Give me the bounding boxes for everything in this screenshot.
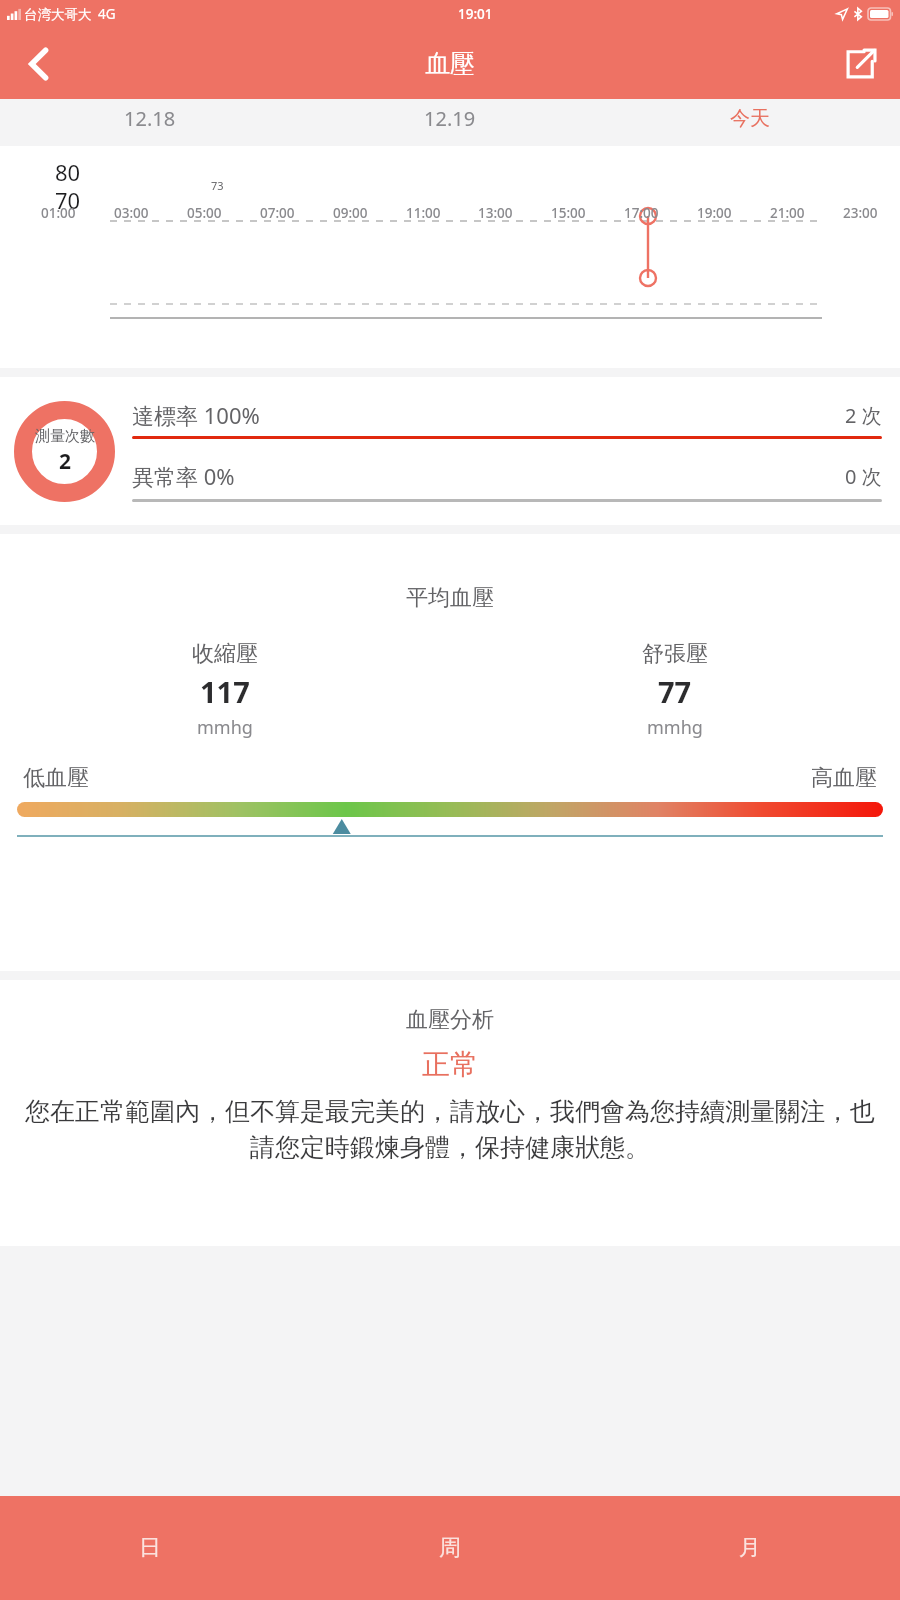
staticText: 77 [658, 672, 692, 711]
staticText: 117 [200, 672, 250, 711]
staticText: 05:00 [187, 204, 222, 222]
button[interactable]: 今天 [600, 99, 900, 137]
staticText: 80 [55, 157, 81, 187]
staticText: 03:00 [114, 204, 149, 222]
staticText: 09:00 [333, 204, 368, 222]
staticText: 台湾大哥大 [24, 6, 92, 23]
staticText: 11:00 [406, 204, 441, 222]
staticText: 異常率 0% [132, 461, 235, 491]
staticText: mmhg [647, 715, 703, 740]
staticText: 血壓 [425, 48, 475, 79]
button[interactable]: 日 [0, 1496, 300, 1600]
button[interactable]: Back [10, 36, 66, 92]
staticText: 測量次數 [35, 427, 95, 446]
button[interactable]: Share [832, 36, 888, 92]
staticText: 2 [59, 447, 72, 476]
staticText: 達標率 100% [132, 400, 260, 430]
staticText: 15:00 [551, 204, 586, 222]
staticText: 13:00 [478, 204, 513, 222]
staticText: 收縮壓 [192, 640, 258, 668]
staticText: 2 次 [845, 402, 882, 429]
button[interactable]: 12.18 [0, 99, 300, 137]
staticText: 19:00 [697, 204, 732, 222]
button[interactable]: 周 [300, 1496, 600, 1600]
staticText: 日 [139, 1534, 161, 1562]
staticText: 今天 [730, 106, 770, 131]
staticText: 73 [211, 178, 224, 193]
staticText: 平均血壓 [406, 584, 494, 612]
staticText: 血壓分析 [406, 1006, 494, 1034]
staticText: 高血壓 [811, 764, 877, 792]
staticText: 您在正常範圍內，但不算是最完美的，請放心，我們會為您持續測量關注，也請您定時鍛煉… [22, 1096, 878, 1163]
staticText: 19:01 [458, 5, 493, 23]
staticText: 23:00 [843, 204, 878, 222]
staticText: 21:00 [770, 204, 805, 222]
staticText: 07:00 [260, 204, 295, 222]
staticText: 12.18 [124, 105, 176, 132]
staticText: mmhg [197, 715, 253, 740]
staticText: 70 [55, 185, 81, 215]
staticText: 12.19 [424, 105, 476, 132]
staticText: 月 [739, 1534, 761, 1562]
button[interactable]: 12.19 [300, 99, 600, 137]
staticText: 01:00 [41, 204, 76, 222]
staticText: 正常 [422, 1047, 478, 1082]
staticText: 舒張壓 [642, 640, 708, 668]
staticText: 17:00 [624, 204, 659, 222]
button[interactable]: 月 [600, 1496, 900, 1600]
staticText: 4G [98, 5, 116, 23]
staticText: 周 [439, 1534, 461, 1562]
staticText: 低血壓 [23, 764, 89, 792]
staticText: 0 次 [845, 463, 882, 490]
